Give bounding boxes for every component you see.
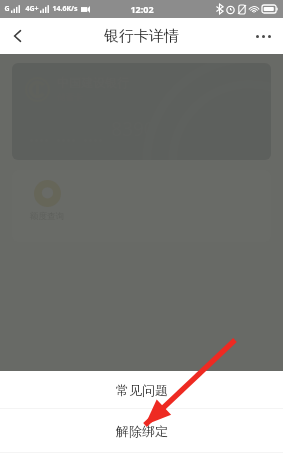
button[interactable]: More options [243,18,283,54]
staticText: 12:02 [130,3,154,15]
staticText: 银行卡详情 [104,27,179,46]
staticText: 解除绑定 [116,423,168,439]
button[interactable]: Back [0,18,36,54]
staticText: 常见问题 [116,382,168,398]
staticText: G [4,4,10,14]
button[interactable]: 常见问题 [0,371,283,408]
button[interactable]: 解除绑定 [0,409,283,452]
button[interactable]: 额度查询 [30,180,64,222]
staticText: 4G+ [25,4,39,14]
staticText: 14.6K/s [52,4,78,14]
